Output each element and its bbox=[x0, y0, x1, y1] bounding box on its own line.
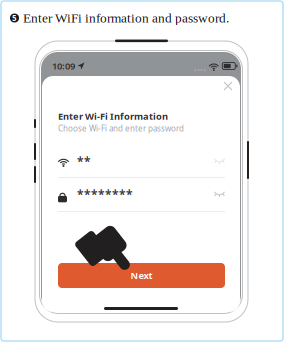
button[interactable]: Close bbox=[219, 77, 237, 95]
staticText: ** bbox=[77, 153, 91, 169]
staticText: Next bbox=[130, 269, 152, 282]
staticText: Choose Wi-Fi and enter password bbox=[58, 123, 184, 134]
button[interactable]: ******** bbox=[58, 178, 225, 211]
staticText: 5 bbox=[12, 13, 17, 23]
staticText: ******** bbox=[77, 186, 133, 202]
staticText: Enter WiFi information and password. bbox=[23, 11, 229, 25]
button[interactable]: Next bbox=[58, 263, 225, 288]
staticText: Enter Wi-Fi Information bbox=[58, 110, 168, 122]
button[interactable]: ** bbox=[58, 145, 225, 178]
staticText: 10:09 bbox=[52, 60, 75, 72]
